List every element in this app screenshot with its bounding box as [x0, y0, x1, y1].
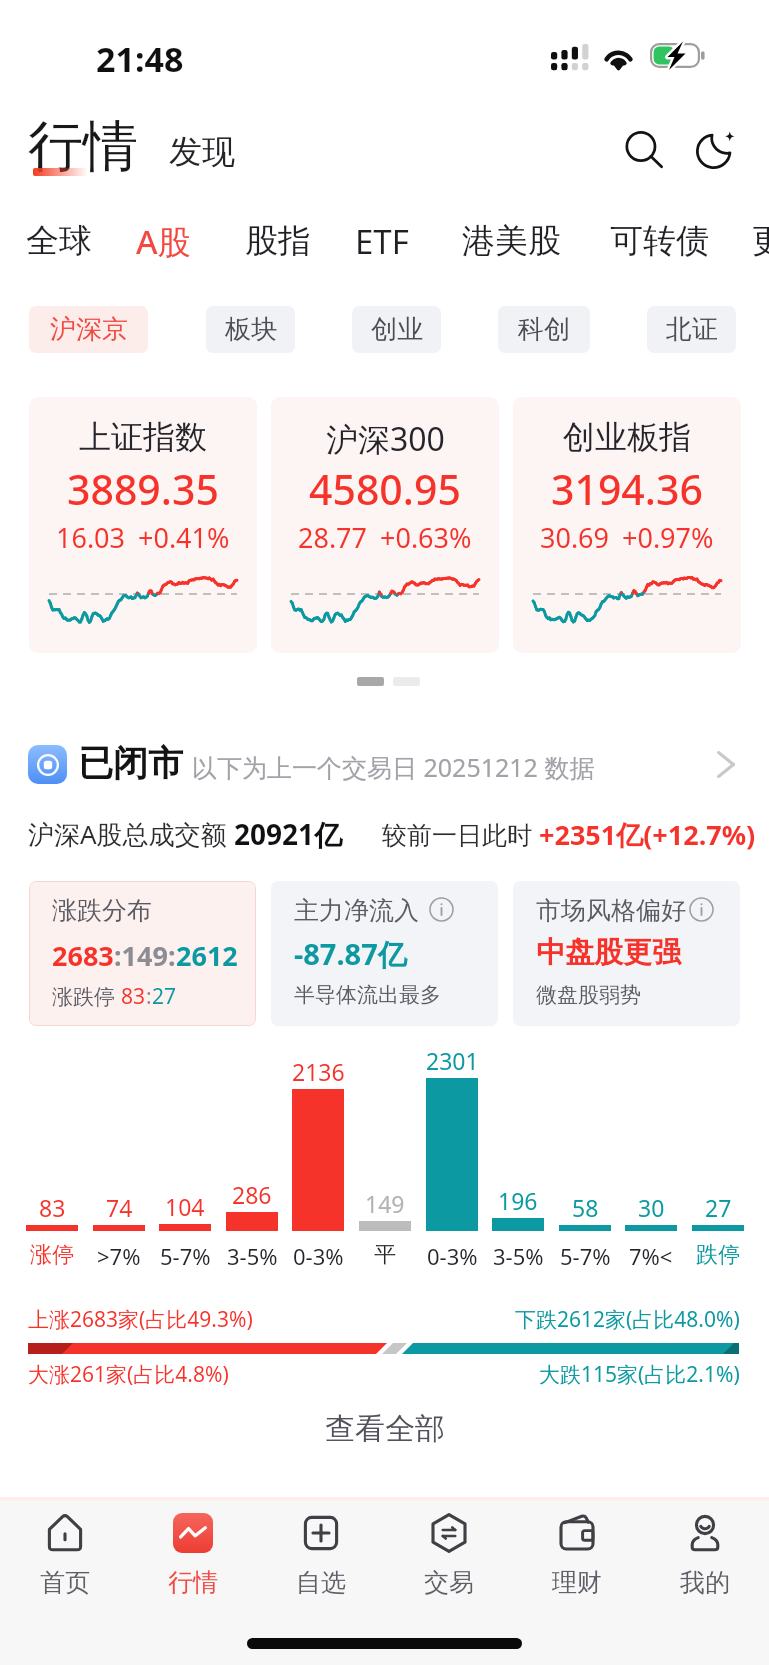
staticText: 5-7% — [560, 1241, 611, 1269]
staticText: 5-7% — [160, 1241, 211, 1269]
button[interactable]: 沪深京 — [29, 306, 148, 353]
staticText: 以下为上一个交易日 20251212 数据 — [192, 750, 595, 784]
button[interactable]: 我的 — [641, 1503, 769, 1603]
button[interactable]: 创业板指 — [513, 397, 741, 653]
staticText: 30 — [638, 1192, 665, 1222]
staticText: 已闭市 — [78, 741, 183, 785]
staticText: 微盘股弱势 — [536, 982, 641, 1008]
staticText: 港美股 — [462, 220, 561, 262]
staticText: 较前一日此时 — [382, 817, 539, 851]
staticText: 149 — [365, 1188, 405, 1218]
staticText: 16.03 — [56, 519, 126, 556]
button[interactable]: 创业 — [352, 306, 441, 353]
staticText: +0.41% — [138, 519, 230, 556]
staticText: 行情 — [28, 112, 138, 181]
staticText: ETF — [355, 219, 409, 264]
staticText: 2301 — [426, 1045, 479, 1075]
staticText: 20921亿 — [234, 815, 343, 853]
staticText: 沪深A股总成交额 — [28, 816, 234, 852]
button[interactable]: 上证指数 — [29, 397, 257, 653]
button[interactable]: 涨跌分布 — [29, 881, 256, 1026]
staticText: 沪深300 — [326, 417, 445, 461]
staticText: 半导体流出最多 — [294, 982, 441, 1008]
staticText: 查看全部 — [325, 1410, 445, 1448]
button[interactable]: 主力净流入 — [271, 881, 498, 1026]
staticText: 板块 — [225, 313, 277, 346]
staticText: 0-3% — [427, 1241, 478, 1269]
staticText: 沪深京 — [50, 313, 128, 346]
button[interactable]: 可转债 — [596, 212, 723, 270]
button[interactable]: A股 — [122, 212, 205, 270]
button[interactable]: 首页 — [0, 1503, 129, 1603]
staticText: 我的 — [680, 1567, 730, 1598]
staticText: 104 — [165, 1191, 205, 1221]
staticText: 大涨261家(占比4.8%) — [28, 1360, 229, 1389]
staticText: 58 — [572, 1192, 599, 1222]
staticText: 3194.36 — [551, 461, 703, 517]
button[interactable]: 已闭市 — [28, 736, 741, 790]
staticText: 83 — [121, 982, 146, 1011]
button[interactable]: Night mode — [686, 119, 746, 179]
button[interactable]: 自选 — [257, 1503, 385, 1603]
staticText: 中盘股更强 — [536, 934, 681, 971]
button[interactable]: 全球 — [12, 212, 106, 270]
staticText: 30.69 — [540, 519, 610, 556]
staticText: 83 — [39, 1192, 66, 1222]
button[interactable]: 沪深300 — [271, 397, 499, 653]
staticText: 发现 — [169, 131, 235, 173]
button[interactable]: 港美股 — [448, 212, 575, 270]
staticText: A股 — [136, 219, 191, 264]
staticText: >7% — [97, 1241, 141, 1269]
staticText: 创业 — [371, 313, 423, 346]
staticText: 涨跌停 — [52, 982, 121, 1011]
staticText: 涨停 — [30, 1241, 74, 1269]
staticText: 74 — [106, 1192, 133, 1222]
staticText: 北证 — [666, 313, 718, 346]
staticText: 286 — [232, 1179, 272, 1209]
staticText: 行情 — [168, 1567, 218, 1598]
staticText: 27 — [705, 1192, 732, 1222]
staticText: 2136 — [292, 1056, 345, 1086]
button[interactable]: 股指 — [231, 212, 325, 270]
staticText: +0.63% — [380, 519, 472, 556]
button[interactable]: 更 — [738, 212, 769, 270]
button[interactable]: 科创 — [498, 306, 590, 353]
staticText: 首页 — [40, 1567, 90, 1598]
staticText: 3889.35 — [67, 461, 219, 517]
button[interactable]: 查看全部 — [301, 1400, 469, 1458]
button[interactable]: 理财 — [513, 1503, 641, 1603]
staticText: 下跌2612家(占比48.0%) — [515, 1305, 740, 1334]
staticText: 更 — [752, 220, 769, 262]
button[interactable]: Search — [614, 120, 674, 180]
button[interactable]: 交易 — [385, 1503, 513, 1603]
staticText: 196 — [498, 1185, 538, 1215]
button[interactable]: 北证 — [647, 306, 736, 353]
staticText: +0.97% — [622, 519, 714, 556]
staticText: 创业板指 — [563, 417, 691, 457]
staticText: 股指 — [245, 220, 311, 262]
button[interactable]: 市场风格偏好 — [513, 881, 740, 1026]
staticText: 可转债 — [610, 220, 709, 262]
staticText: 交易 — [424, 1567, 474, 1598]
button[interactable]: 板块 — [206, 306, 295, 353]
staticText: 2612 — [176, 937, 238, 974]
staticText: 4580.95 — [309, 461, 461, 517]
staticText: 7%< — [629, 1241, 673, 1269]
staticText: 上涨2683家(占比49.3%) — [28, 1305, 253, 1334]
button[interactable]: ETF — [341, 212, 423, 270]
staticText: 28.77 — [298, 519, 368, 556]
staticText: 3-5% — [227, 1241, 278, 1269]
staticText: 涨跌分布 — [52, 895, 152, 926]
staticText: 自选 — [296, 1567, 346, 1598]
staticText: 科创 — [518, 313, 570, 346]
staticText: 理财 — [552, 1567, 602, 1598]
staticText: 0-3% — [293, 1241, 344, 1269]
staticText: 市场风格偏好 — [536, 895, 686, 926]
staticText: 2683 — [52, 937, 114, 974]
staticText: 主力净流入 — [294, 895, 419, 926]
staticText: +2351亿(+12.7%) — [539, 816, 756, 853]
button[interactable]: 行情 — [129, 1503, 257, 1603]
staticText: : — [146, 982, 152, 1011]
staticText: :149: — [114, 937, 176, 974]
staticText: 27 — [152, 982, 177, 1011]
